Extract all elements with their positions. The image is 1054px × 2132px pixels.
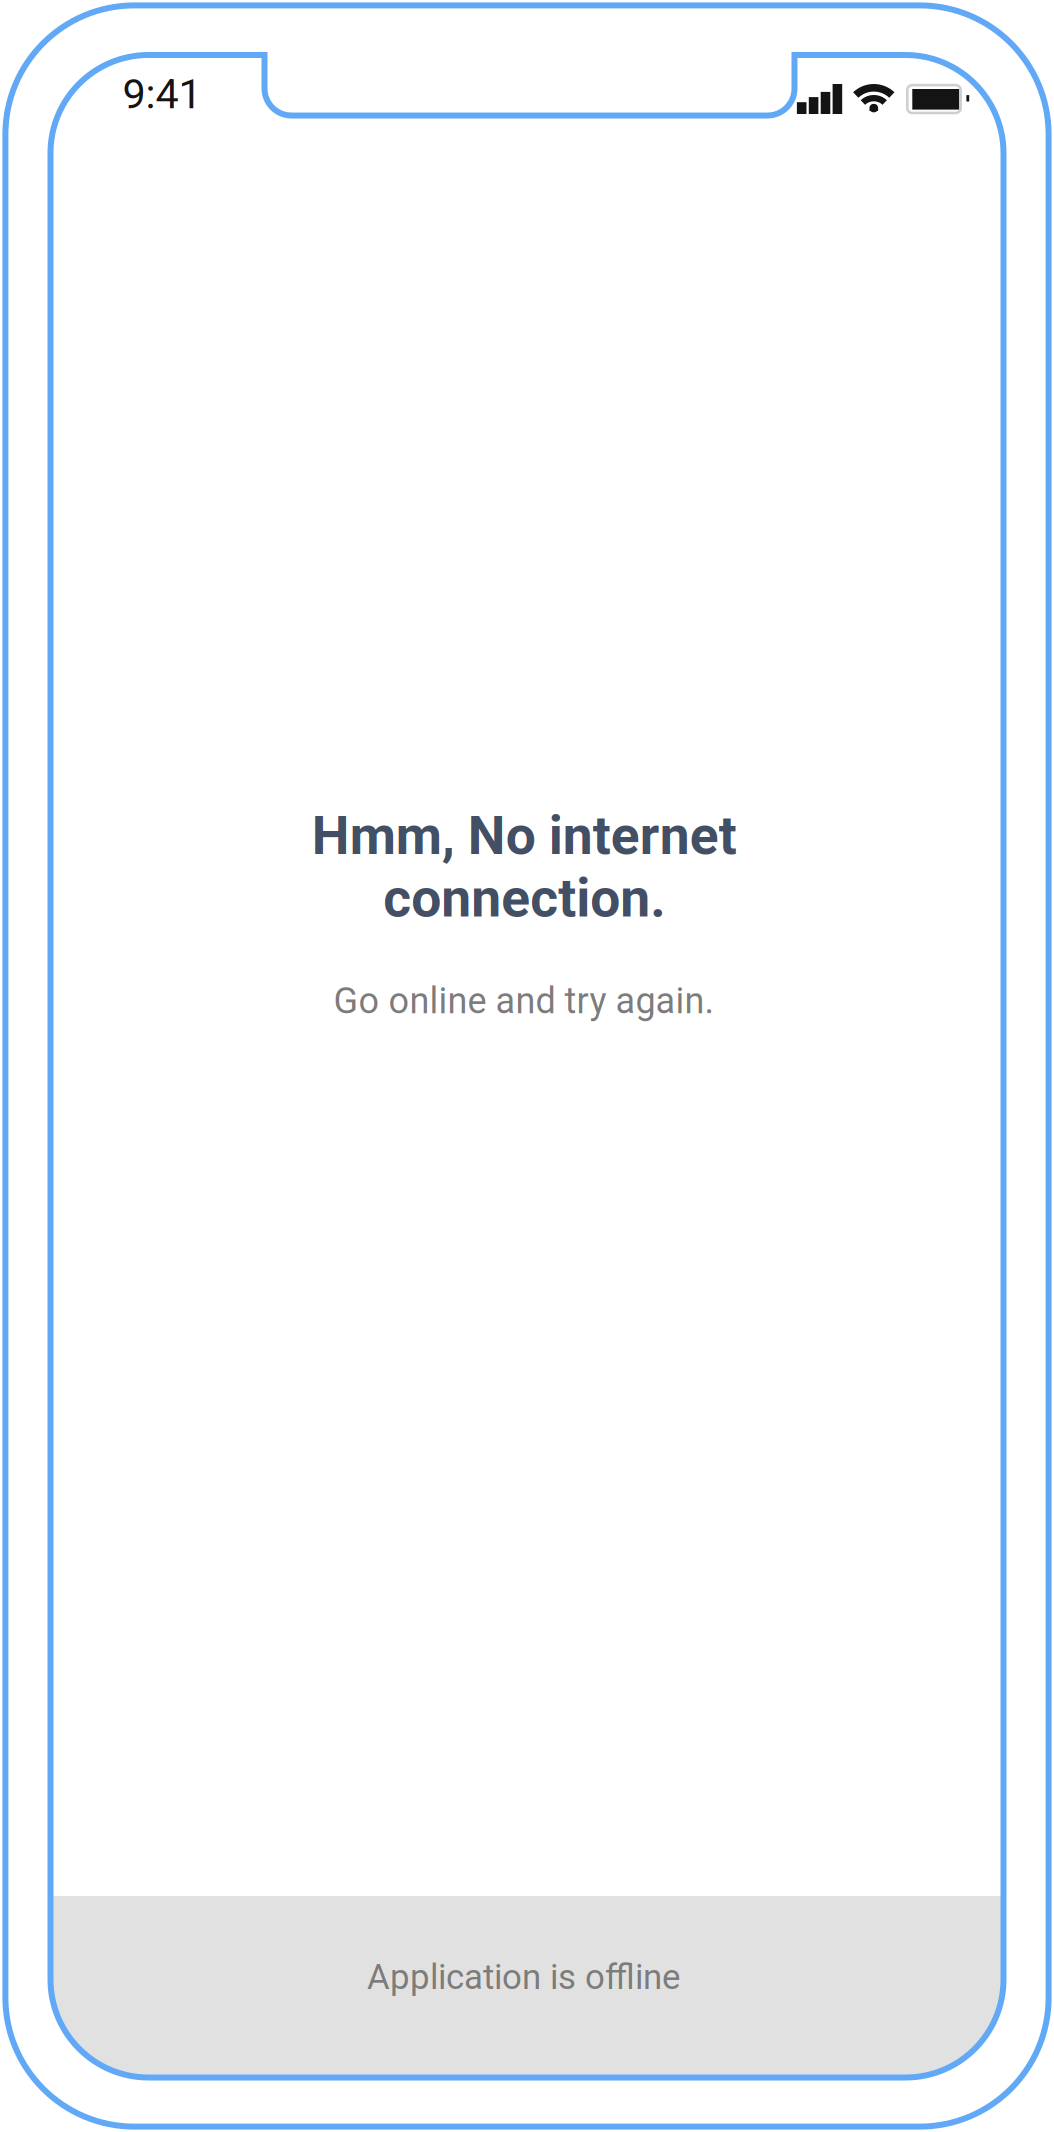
button[interactable]: Application is offline xyxy=(52,1896,1002,2076)
staticText: 9:41 xyxy=(122,70,201,118)
staticText: Hmm, No internet xyxy=(312,804,737,867)
staticText: connection. xyxy=(383,867,665,929)
button[interactable]: Go online and try again. xyxy=(333,980,713,1022)
staticText: Go online and try again. xyxy=(333,980,713,1022)
staticText: Application is offline xyxy=(367,1957,680,1997)
